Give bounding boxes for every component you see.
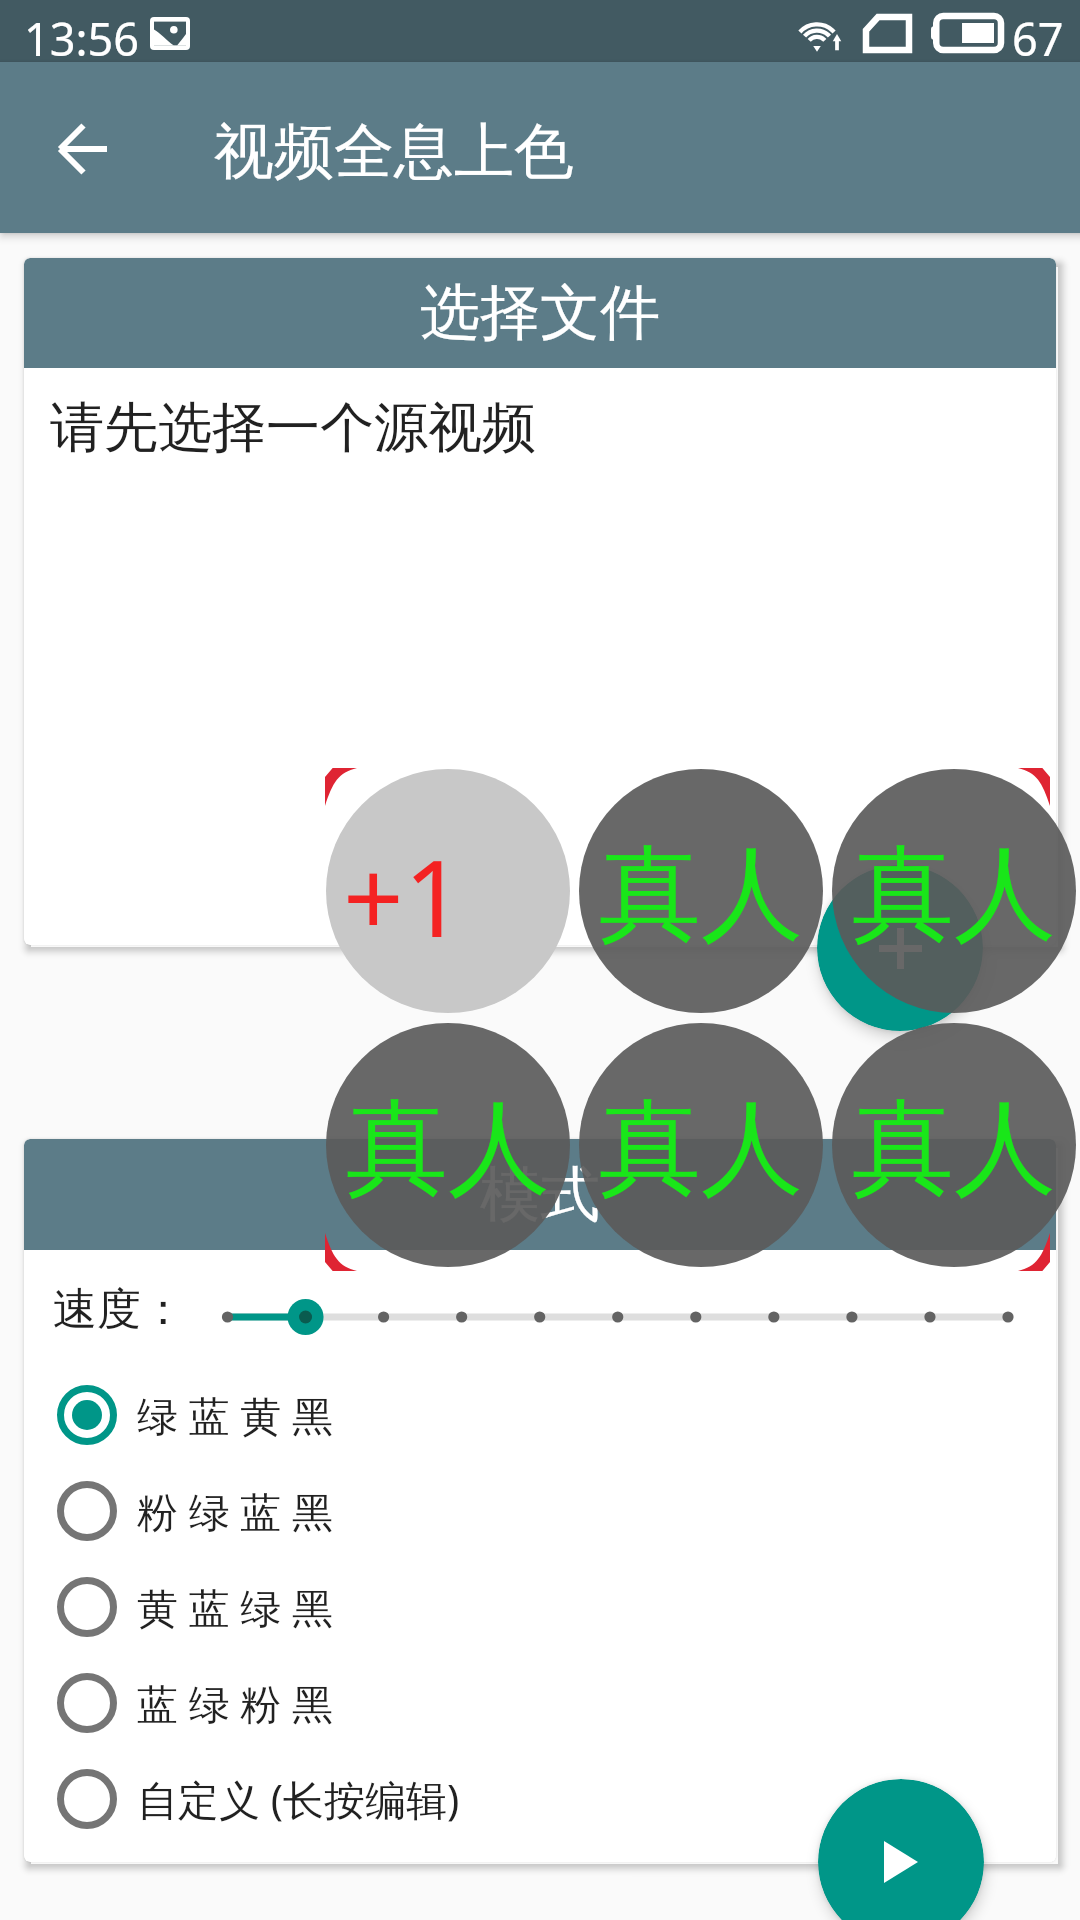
button[interactable]: 绿 蓝 黄 黑 [24, 1367, 1056, 1463]
staticText: 真人 [599, 831, 803, 959]
button[interactable]: 黄 蓝 绿 黑 [24, 1559, 1056, 1655]
button[interactable]: 真人 [579, 1023, 823, 1267]
staticText: 自定义 (长按编辑) [137, 1771, 460, 1827]
button[interactable]: 真人 [326, 1023, 570, 1267]
staticText: 真人 [599, 1085, 803, 1213]
button[interactable]: 蓝 绿 粉 黑 [24, 1655, 1056, 1751]
staticText: 真人 [852, 831, 1056, 959]
button[interactable]: Add [817, 865, 983, 1031]
staticText: 视频全息上色 [214, 114, 574, 190]
staticText: 黄 蓝 绿 黑 [137, 1579, 333, 1635]
staticText: 速度： [53, 1282, 185, 1337]
other: Screenshot [150, 17, 190, 50]
other: SIM card [866, 17, 909, 50]
button[interactable]: 真人 [832, 769, 1076, 1013]
staticText: 选择文件 [420, 275, 660, 351]
staticText: 13:56 [24, 8, 140, 69]
staticText: 粉 绿 蓝 黑 [137, 1483, 333, 1539]
other: Wi-Fi [797, 15, 847, 51]
button[interactable]: Start [818, 1779, 984, 1920]
staticText: 模式 [480, 1157, 600, 1233]
staticText: 绿 蓝 黄 黑 [137, 1387, 333, 1443]
button[interactable]: 真人 [579, 769, 823, 1013]
button[interactable]: 自定义 (长按编辑) [24, 1751, 1056, 1847]
other: Battery [931, 16, 1001, 50]
staticText: 请先选择一个源视频 [50, 394, 536, 462]
staticText: 真人 [852, 1085, 1056, 1213]
staticText: 真人 [346, 1085, 550, 1213]
staticText: 蓝 绿 粉 黑 [137, 1675, 333, 1731]
staticText: +1 [343, 824, 465, 968]
button[interactable]: One more item [326, 769, 570, 1013]
staticText: 67 [1012, 8, 1064, 69]
button[interactable]: Back [34, 104, 130, 194]
button[interactable]: 真人 [832, 1023, 1076, 1267]
button[interactable]: 粉 绿 蓝 黑 [24, 1463, 1056, 1559]
